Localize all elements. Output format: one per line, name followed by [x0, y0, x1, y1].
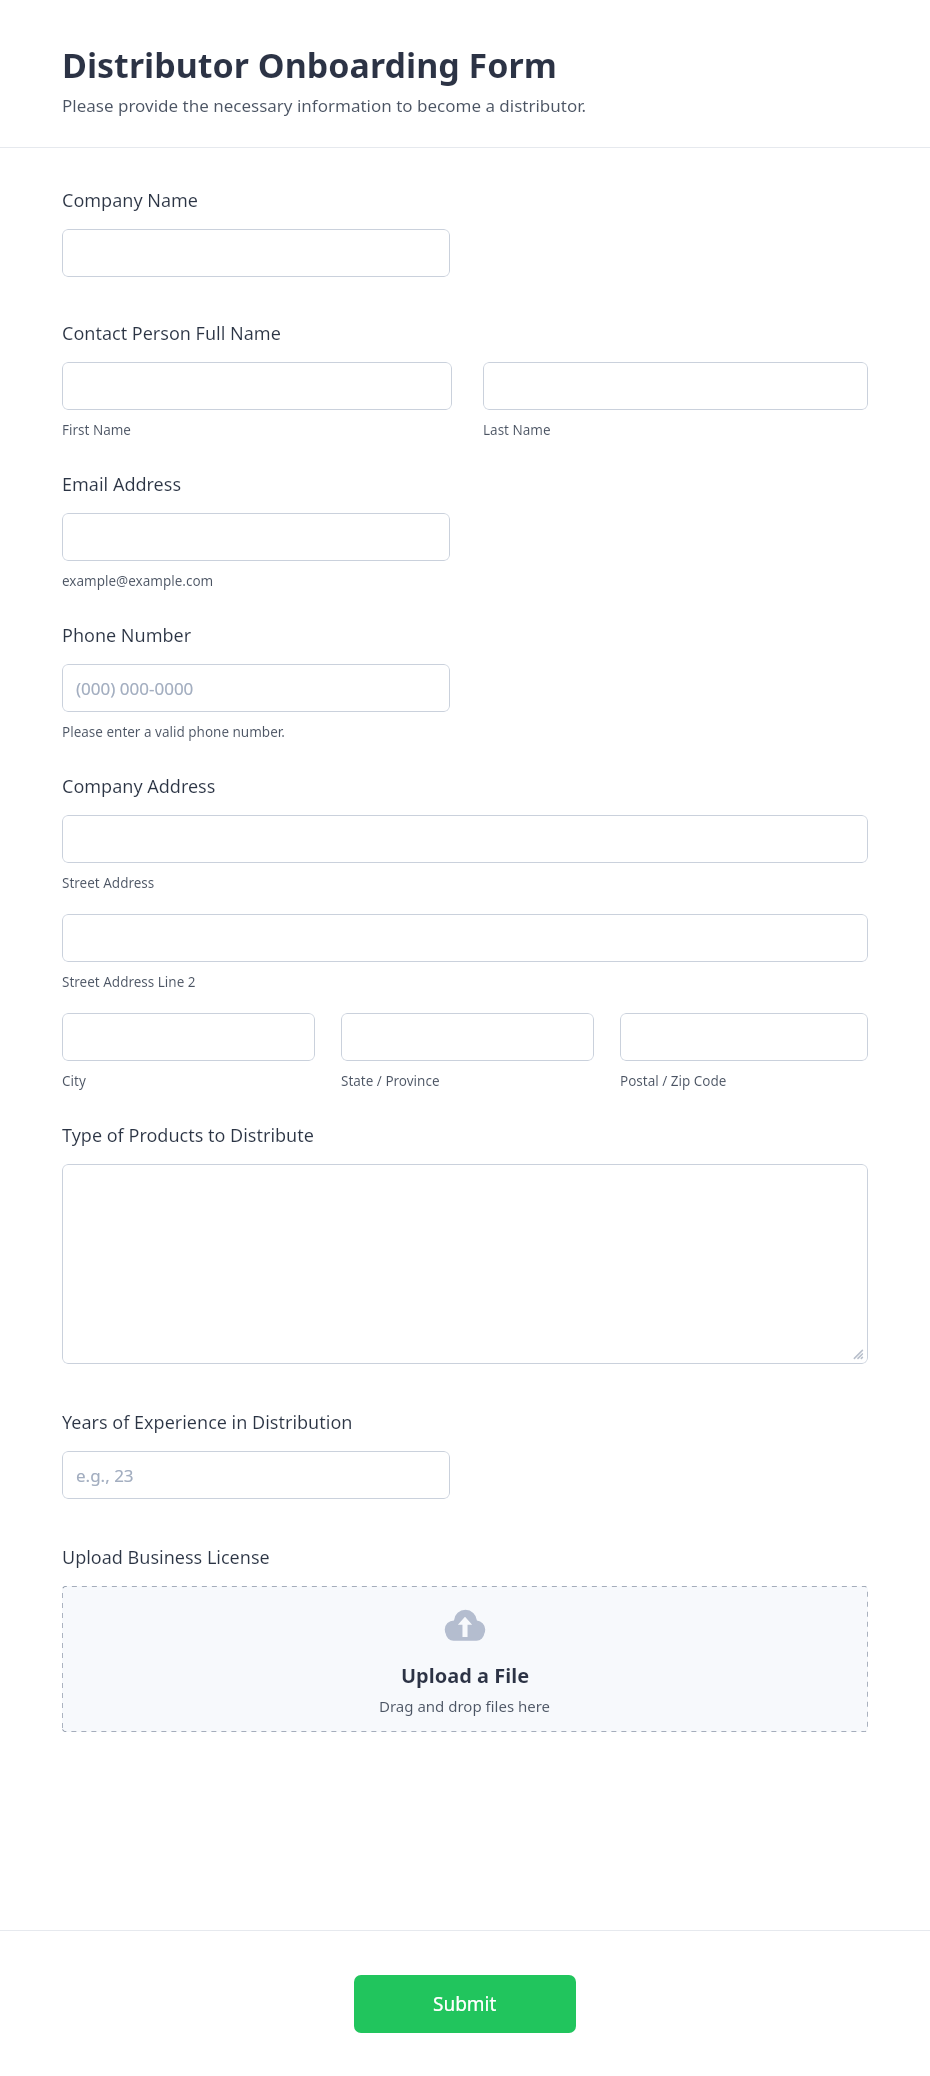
staticText: Last Name	[483, 421, 551, 439]
staticText: State / Province	[341, 1072, 440, 1090]
button[interactable]	[62, 815, 868, 863]
staticText: Upload a File	[401, 1662, 530, 1689]
button[interactable]	[62, 362, 452, 410]
button[interactable]	[620, 1013, 868, 1061]
staticText: e.g., 23	[76, 1464, 134, 1487]
staticText: Contact Person Full Name	[62, 321, 281, 346]
button[interactable]	[341, 1013, 594, 1061]
staticText: Street Address	[62, 874, 155, 892]
staticText: Type of Products to Distribute	[62, 1123, 314, 1148]
staticText: (000) 000-0000	[76, 677, 194, 700]
staticText: Company Name	[62, 188, 199, 213]
staticText: example@example.com	[62, 572, 214, 590]
button[interactable]	[483, 362, 868, 410]
button[interactable]	[62, 513, 450, 561]
staticText: Company Address	[62, 774, 216, 799]
staticText: Phone Number	[62, 623, 192, 648]
button[interactable]: e.g., 23	[62, 1451, 450, 1499]
staticText: First Name	[62, 421, 131, 439]
staticText: Street Address Line 2	[62, 973, 196, 991]
staticText: Please enter a valid phone number.	[62, 723, 285, 741]
staticText: City	[62, 1072, 86, 1090]
button[interactable]: Submit	[354, 1975, 576, 2033]
button[interactable]: (000) 000-0000	[62, 664, 450, 712]
button[interactable]: Type of products to distribute	[62, 1164, 868, 1364]
staticText: Postal / Zip Code	[620, 1072, 727, 1090]
button[interactable]	[62, 229, 450, 277]
staticText: Submit	[433, 1991, 497, 2017]
staticText: Upload Business License	[62, 1545, 270, 1570]
button[interactable]	[62, 914, 868, 962]
staticText: Drag and drop files here	[379, 1696, 551, 1716]
staticText: Years of Experience in Distribution	[62, 1410, 353, 1435]
staticText: Distributor Onboarding Form	[62, 42, 557, 88]
staticText: Please provide the necessary information…	[62, 94, 587, 117]
button[interactable]: Upload a file	[62, 1586, 868, 1732]
staticText: Email Address	[62, 472, 182, 497]
button[interactable]	[62, 1013, 315, 1061]
